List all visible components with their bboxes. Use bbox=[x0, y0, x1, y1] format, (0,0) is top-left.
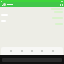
button[interactable]: Contact avatar bbox=[3, 3, 6, 6]
button[interactable]: Attachment option bbox=[1, 47, 63, 55]
button[interactable]: Back bbox=[0, 2, 64, 7]
button[interactable] bbox=[55, 23, 63, 25]
button[interactable]: Back bbox=[1, 4, 3, 6]
